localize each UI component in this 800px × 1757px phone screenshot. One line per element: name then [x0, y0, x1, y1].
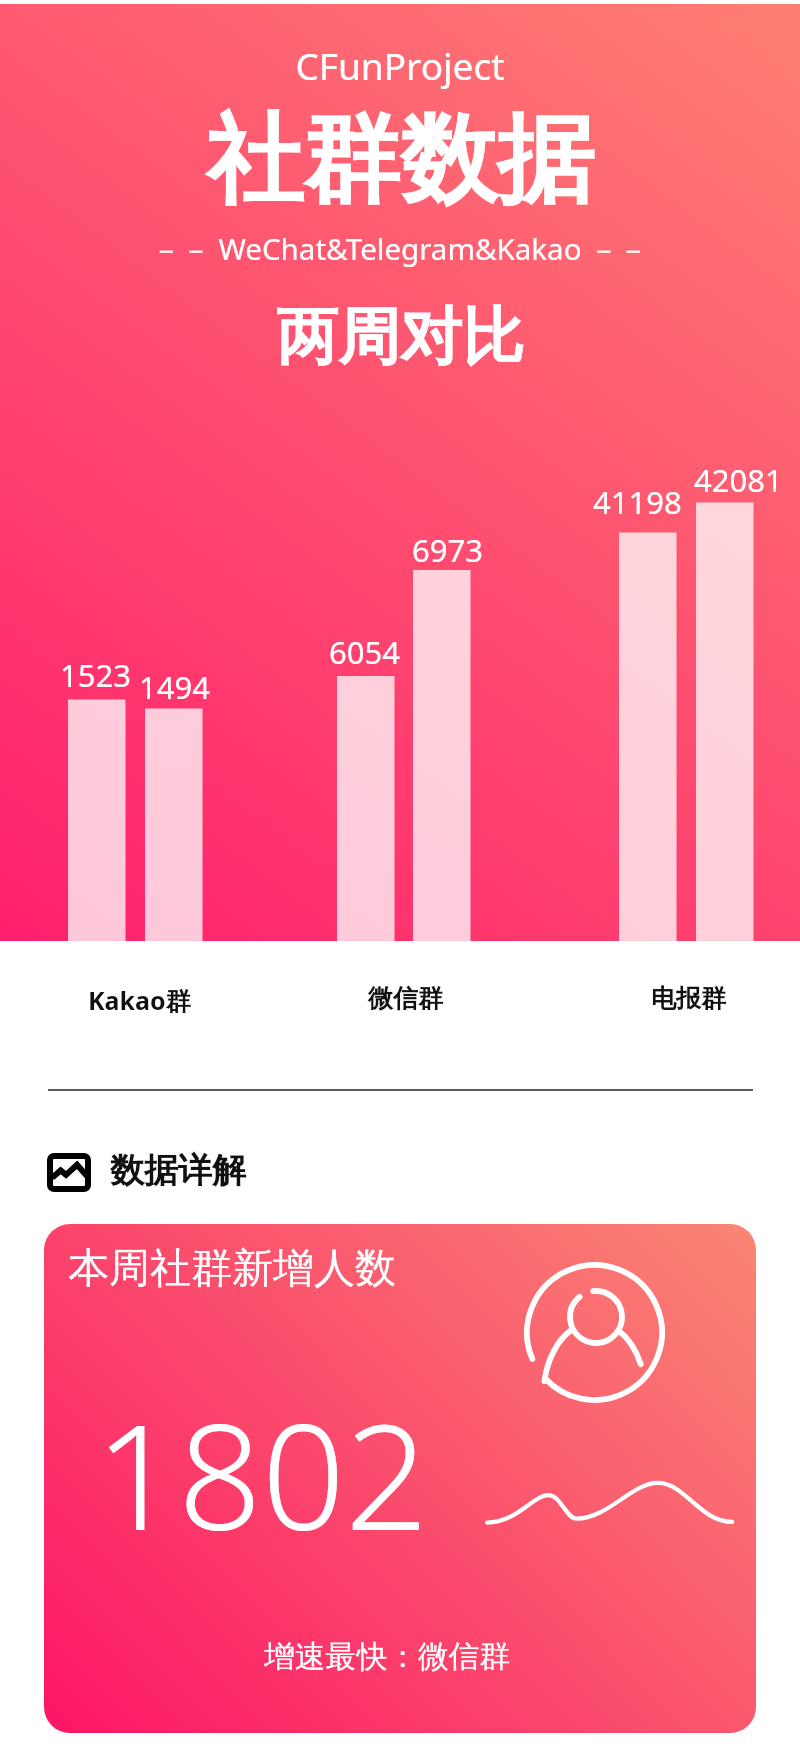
staticText: 增速最快：微信群: [264, 1637, 511, 1676]
staticText: CFunProject: [0, 40, 800, 90]
staticText: Kakao群: [88, 983, 191, 1017]
staticText: 1494: [139, 666, 210, 708]
button[interactable]: Data details: [47, 1153, 91, 1192]
staticText: 42081: [694, 459, 783, 501]
staticText: 社群数据: [0, 100, 800, 222]
staticText: 6973: [412, 529, 483, 571]
staticText: 微信群: [368, 983, 443, 1014]
staticText: 数据详解: [110, 1149, 246, 1192]
staticText: 1802: [95, 1374, 429, 1573]
staticText: 两周对比: [0, 298, 800, 376]
staticText: －－ WeChat&Telegram&Kakao －－: [0, 228, 800, 268]
button[interactable]: 本周社群新增人数: [44, 1224, 756, 1733]
staticText: 41198: [593, 481, 682, 523]
staticText: 6054: [329, 631, 400, 673]
staticText: 本周社群新增人数: [68, 1243, 396, 1295]
staticText: 1523: [60, 654, 131, 696]
staticText: 电报群: [651, 983, 726, 1014]
